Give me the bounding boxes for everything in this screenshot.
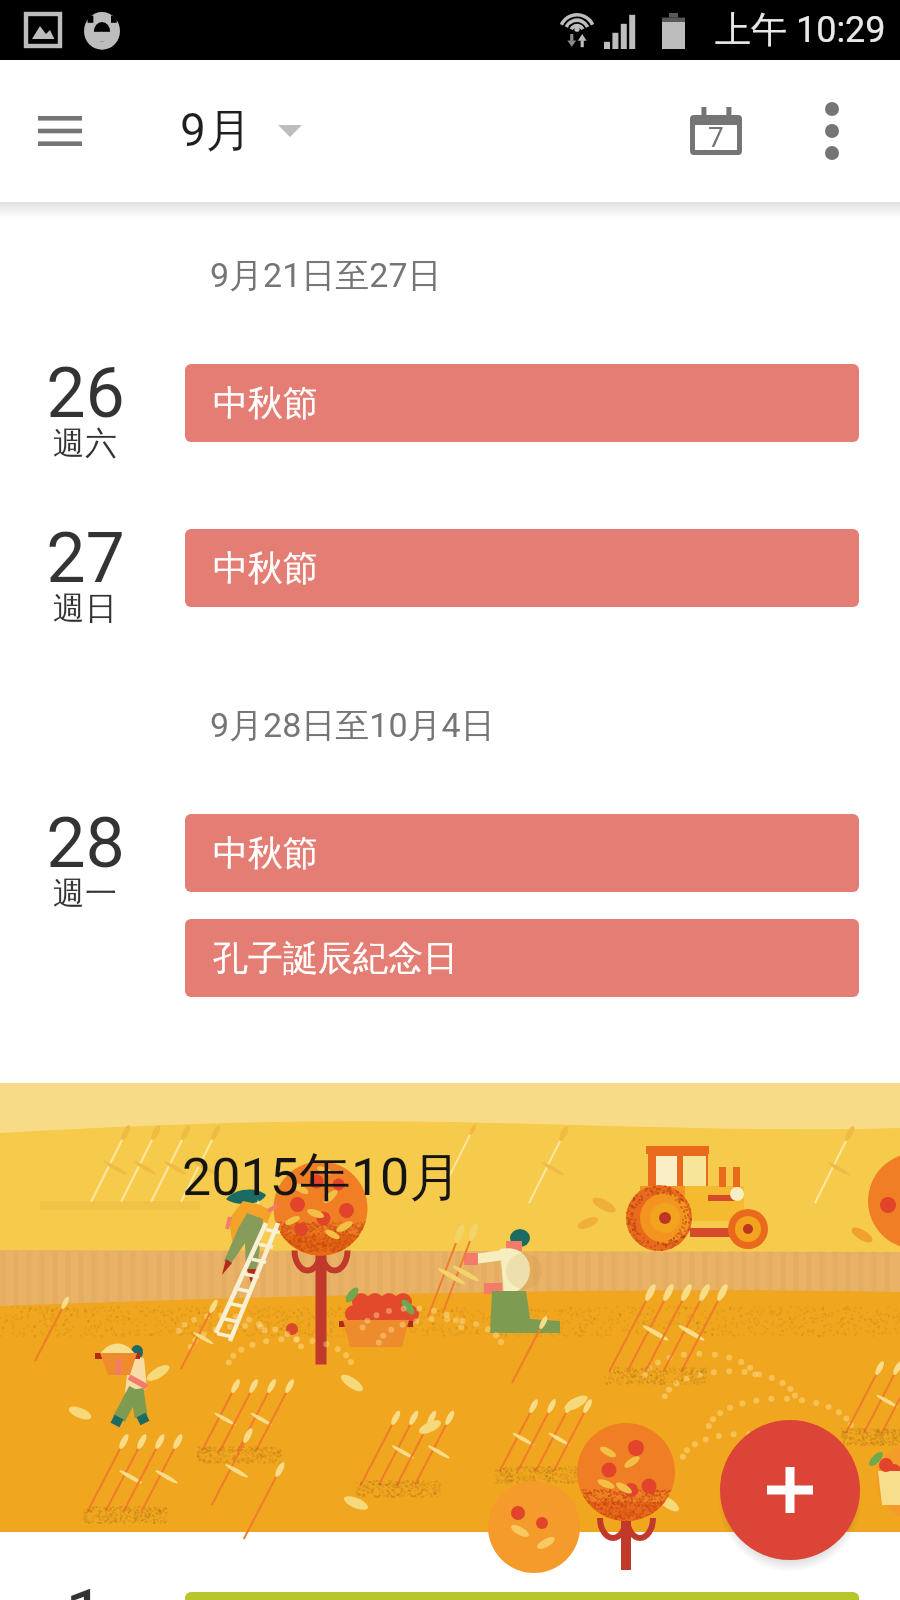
staticText: 2015年10月 [182, 1145, 462, 1211]
staticText: 1 [65, 1574, 105, 1600]
staticText: 中秋節 [213, 546, 318, 590]
staticText: 上午 10:29 [715, 7, 886, 52]
staticText: 中秋節 [213, 381, 318, 425]
staticText: 28 [46, 802, 125, 884]
button[interactable]: 中秋節 [185, 814, 859, 892]
button[interactable]: 中秋節 [185, 529, 859, 607]
staticText: 孔子誕辰紀念日 [213, 936, 458, 980]
button[interactable]: Go to today [664, 79, 768, 183]
staticText: 週一 [53, 873, 117, 913]
button[interactable]: 2015年10月 [0, 1083, 900, 1532]
staticText: 中秋節 [213, 831, 318, 875]
button[interactable]: More options [784, 83, 880, 179]
button[interactable]: Open navigation drawer [12, 83, 108, 179]
staticText: 26 [46, 352, 125, 434]
button[interactable]: Create event [720, 1420, 860, 1560]
button[interactable]: 孔子誕辰紀念日 [185, 919, 859, 997]
staticText: 9月28日至10月4日 [210, 704, 495, 747]
staticText: 27 [46, 517, 125, 599]
button[interactable]: 國慶日 [185, 1592, 859, 1600]
staticText: 9月 [180, 102, 252, 160]
staticText: 週六 [53, 423, 117, 463]
staticText: 週日 [53, 588, 117, 628]
staticText: 9月21日至27日 [210, 254, 442, 297]
staticText: 7 [708, 121, 724, 154]
button[interactable]: 中秋節 [185, 364, 859, 442]
button[interactable]: 9月 [180, 102, 302, 160]
